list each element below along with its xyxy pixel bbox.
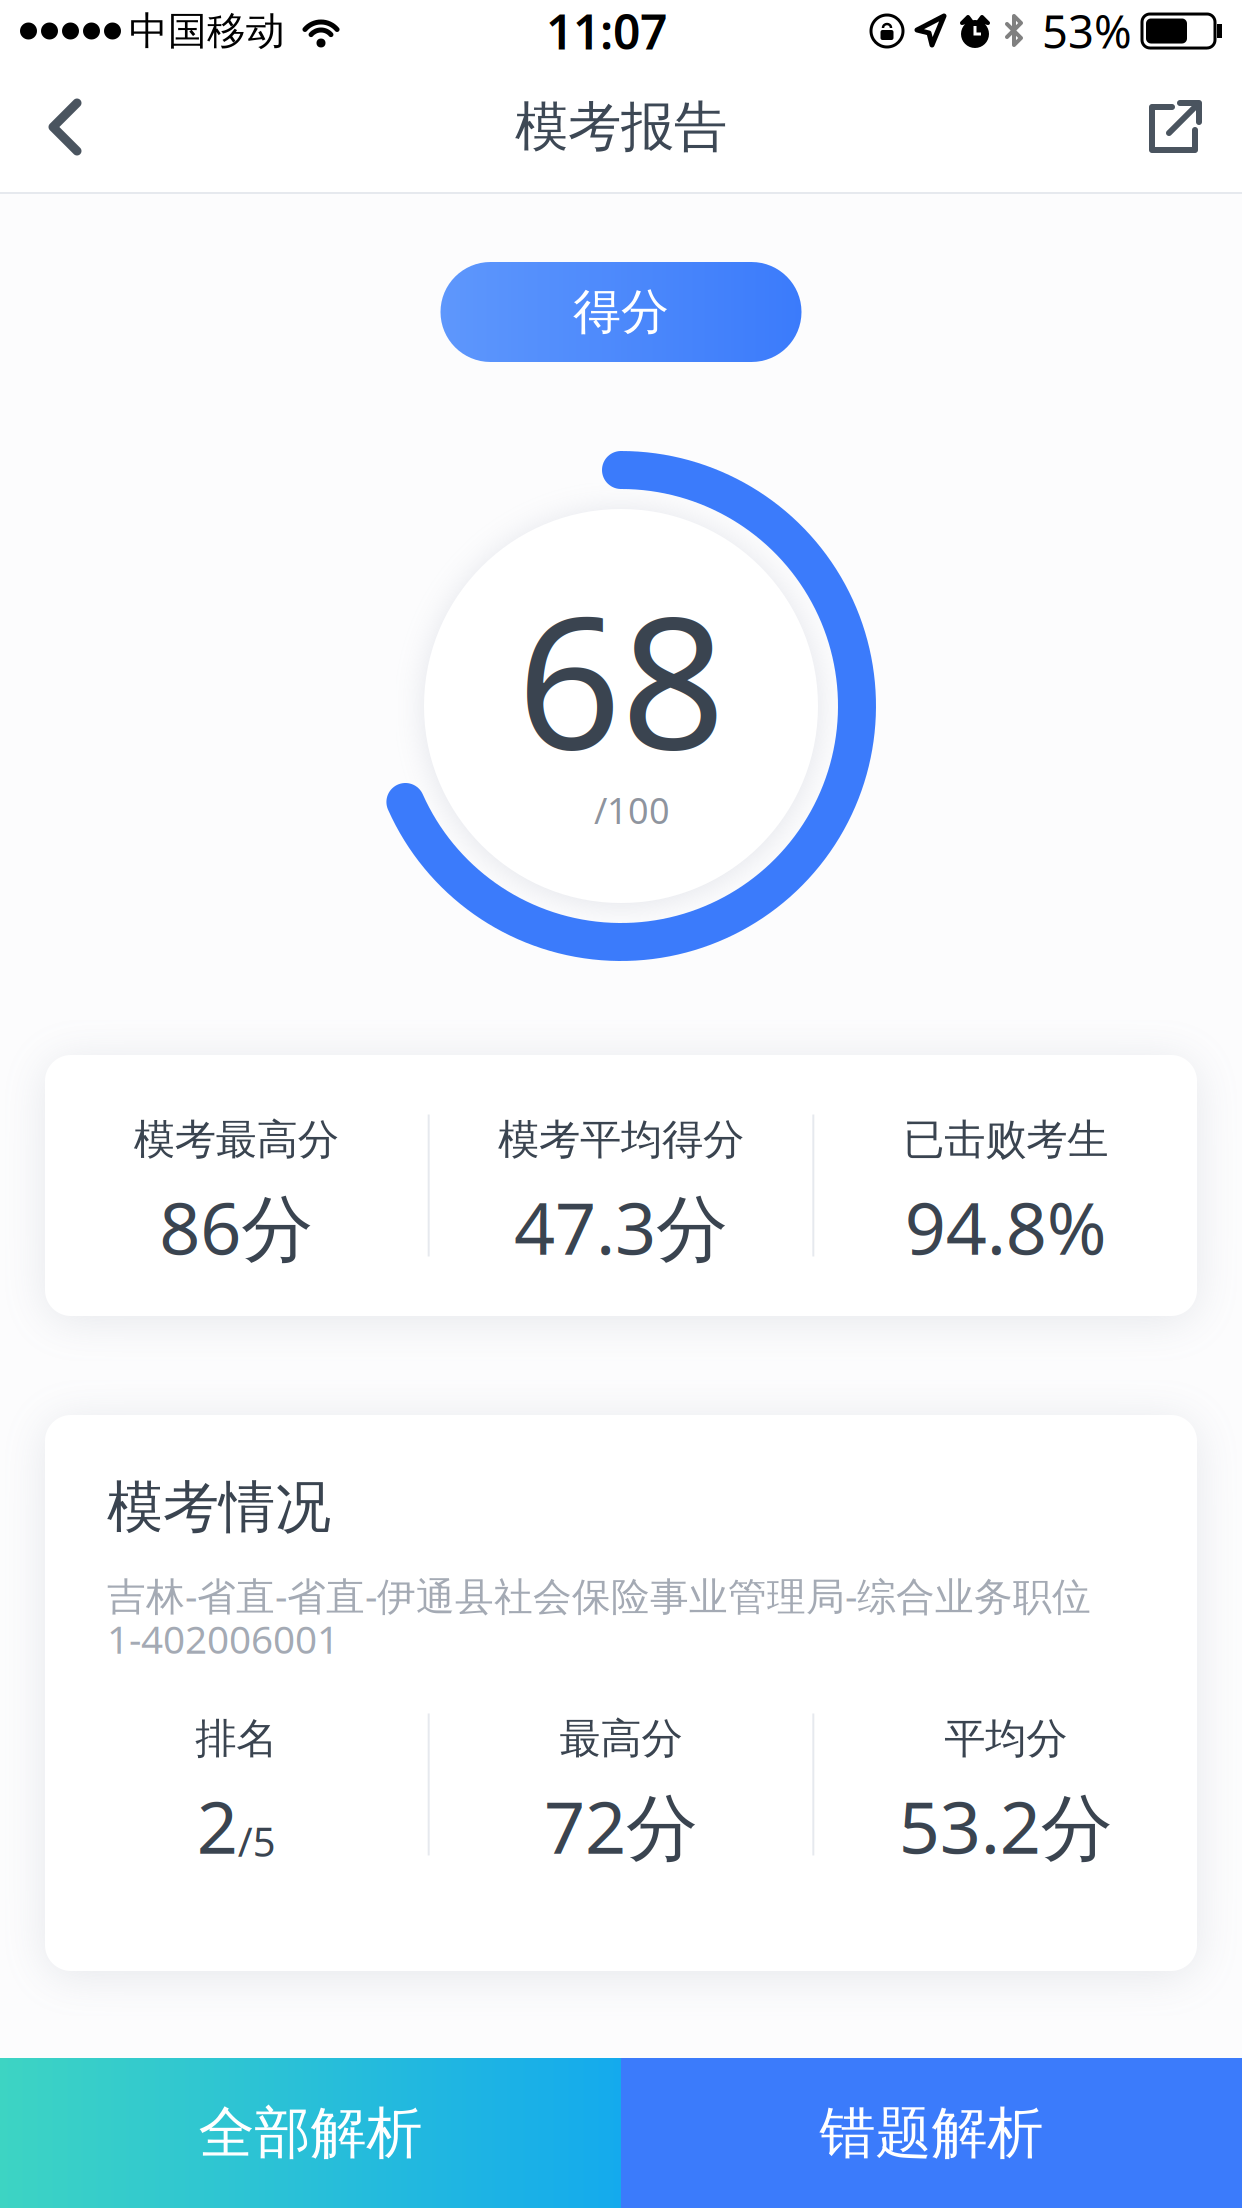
staticText: 47.3分	[514, 1179, 728, 1275]
staticText: 模考报告	[515, 94, 727, 160]
staticText: 68	[517, 557, 725, 799]
staticText: 2	[197, 1778, 238, 1874]
staticText: 中国移动	[129, 7, 285, 55]
staticText: 排名	[195, 1713, 277, 1764]
staticText: 94.8%	[905, 1179, 1107, 1275]
staticText: 吉林-省直-省直-伊通县社会保险事业管理局-综合业务职位1-402006001	[107, 1570, 1091, 1664]
staticText: 86分	[159, 1179, 313, 1275]
staticText: 53.2分	[899, 1778, 1113, 1874]
button[interactable]: 错题解析	[621, 2058, 1242, 2208]
staticText: /5	[238, 1815, 276, 1868]
staticText: 模考情况	[107, 1473, 331, 1542]
staticText: 已击败考生	[903, 1114, 1108, 1165]
button[interactable]: 得分	[440, 262, 801, 362]
button[interactable]: Share	[1122, 62, 1232, 192]
button[interactable]: 全部解析	[0, 2058, 621, 2208]
button[interactable]: Back	[10, 62, 120, 192]
staticText: 53%	[1042, 1, 1132, 61]
staticText: 全部解析	[198, 2099, 422, 2167]
staticText: 平均分	[944, 1713, 1067, 1764]
staticText: 模考平均得分	[498, 1114, 744, 1165]
staticText: 最高分	[559, 1713, 682, 1764]
staticText: 错题解析	[819, 2099, 1043, 2167]
staticText: 模考最高分	[134, 1114, 339, 1165]
staticText: 得分	[573, 282, 669, 341]
staticText: /100	[594, 786, 670, 834]
staticText: 72分	[544, 1778, 698, 1874]
staticText: 11:07	[546, 0, 667, 63]
